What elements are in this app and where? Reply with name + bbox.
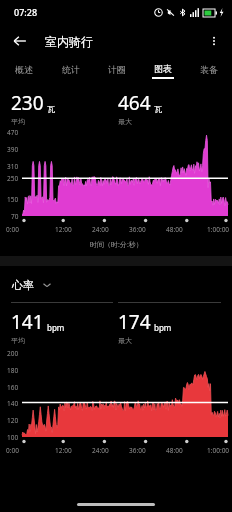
staticText: 装备 [200, 64, 218, 75]
button[interactable]: 141 [11, 302, 113, 345]
staticText: 12:00 [55, 446, 72, 455]
button[interactable]: 174 [118, 302, 221, 345]
staticText: 310 [7, 162, 19, 171]
staticText: 心率 [12, 278, 34, 292]
staticText: 12:00 [55, 225, 72, 234]
staticText: 141 [11, 309, 44, 335]
staticText: 48:00 [166, 446, 183, 455]
staticText: 1:00:00 [207, 225, 230, 234]
staticText: 0:00 [6, 225, 19, 234]
staticText: 0:00 [6, 446, 19, 455]
staticText: 计圈 [108, 64, 126, 75]
staticText: 36:00 [129, 446, 146, 455]
button[interactable]: 230 [11, 90, 113, 126]
staticText: 100 [7, 433, 19, 442]
staticText: 图表 [154, 63, 172, 74]
staticText: 最大 [118, 336, 132, 345]
staticText: 36:00 [129, 225, 146, 234]
button[interactable]: 统计 [47, 58, 94, 84]
staticText: 390 [7, 145, 19, 154]
staticText: 室内骑行 [45, 34, 93, 49]
staticText: 概述 [15, 64, 33, 75]
staticText: 230 [11, 90, 44, 116]
button[interactable]: 计圈 [94, 58, 140, 84]
button[interactable]: 更多选项 [202, 29, 226, 53]
staticText: 瓦 [154, 104, 162, 114]
staticText: 1:00:00 [207, 446, 230, 455]
button[interactable]: 概述 [0, 58, 47, 84]
button[interactable]: 464 [118, 90, 221, 126]
staticText: 464 [118, 90, 151, 116]
staticText: bpm [154, 322, 172, 333]
button[interactable]: 返回 [8, 29, 32, 53]
staticText: 140 [7, 399, 19, 408]
staticText: 174 [118, 309, 151, 335]
staticText: 470 [7, 128, 19, 137]
staticText: 200 [7, 349, 19, 358]
staticText: bpm [47, 322, 65, 333]
staticText: 160 [7, 383, 19, 392]
staticText: 180 [7, 366, 19, 375]
staticText: 120 [7, 416, 19, 425]
staticText: 统计 [62, 64, 80, 75]
staticText: 150 [7, 195, 19, 204]
staticText: 瓦 [47, 104, 55, 114]
staticText: 250 [7, 174, 19, 183]
button[interactable]: 装备 [186, 58, 232, 84]
staticText: 70 [11, 212, 19, 221]
button[interactable]: 图表 [140, 58, 186, 84]
staticText: 平均 [11, 336, 25, 345]
staticText: 平均 [11, 117, 25, 126]
staticText: 24:00 [92, 225, 109, 234]
button[interactable]: 心率 [12, 276, 232, 294]
staticText: 48:00 [166, 225, 183, 234]
staticText: 最大 [118, 117, 132, 126]
staticText: 07:28 [14, 6, 38, 18]
staticText: 24:00 [92, 446, 109, 455]
staticText: 时间（时:分:秒） [90, 240, 143, 250]
